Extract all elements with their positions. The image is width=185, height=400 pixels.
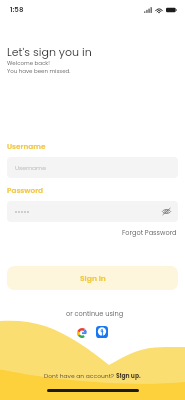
button[interactable]: Sign In bbox=[7, 266, 178, 290]
staticText: You have been missed. bbox=[7, 67, 71, 75]
staticText: Sign In bbox=[80, 273, 106, 284]
button[interactable]: Show password bbox=[161, 206, 172, 217]
button[interactable]: Username bbox=[7, 157, 178, 178]
button[interactable]: Continue with Google bbox=[75, 326, 88, 339]
button[interactable]: Sign up. bbox=[116, 372, 141, 380]
staticText: Dont have an account? bbox=[44, 372, 116, 380]
staticText: Password bbox=[7, 185, 44, 195]
staticText: or continue using bbox=[66, 309, 124, 318]
staticText: Welcome back! bbox=[7, 59, 50, 67]
staticText: Username bbox=[7, 141, 46, 151]
button[interactable]: Continue with Facebook bbox=[96, 326, 108, 338]
staticText: 1:58 bbox=[10, 5, 24, 15]
button[interactable]: Forgot Password bbox=[122, 228, 177, 237]
staticText: Let's sign you in bbox=[7, 44, 92, 59]
staticText: Username bbox=[15, 164, 46, 172]
button[interactable]: Show password bbox=[7, 201, 178, 222]
